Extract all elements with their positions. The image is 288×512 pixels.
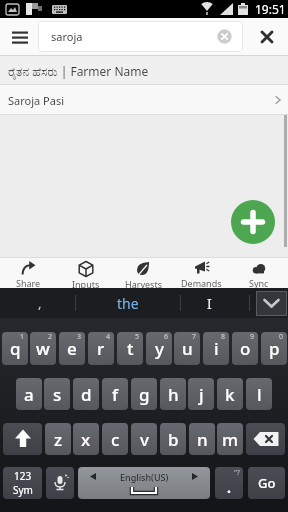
- staticText: e: [67, 337, 77, 360]
- staticText: ರೈತನ ಹೆಸರು | Farmer Name: [8, 63, 149, 79]
- staticText: 19:51: [255, 1, 286, 17]
- staticText: v: [140, 428, 149, 451]
- staticText: the: [117, 294, 139, 313]
- staticText: Sync: [249, 277, 269, 288]
- button[interactable]: v: [131, 423, 157, 455]
- staticText: 7: [192, 332, 197, 342]
- staticText: 0: [279, 332, 284, 342]
- button[interactable]: c: [102, 423, 128, 455]
- staticText: b: [168, 428, 179, 451]
- button[interactable]: u: [174, 332, 200, 365]
- button[interactable]: I: [186, 288, 232, 318]
- button[interactable]: .: [215, 467, 243, 499]
- staticText: 2: [48, 332, 53, 342]
- staticText: 6: [164, 332, 169, 342]
- staticText: English(US): [120, 471, 169, 483]
- button[interactable]: q: [2, 332, 28, 365]
- staticText: t: [127, 337, 134, 360]
- button[interactable]: [6, 24, 34, 50]
- staticText: w: [36, 337, 50, 360]
- button[interactable]: r: [88, 332, 114, 365]
- button[interactable]: x: [73, 423, 99, 455]
- button[interactable]: t: [117, 332, 143, 365]
- button[interactable]: b: [160, 423, 186, 455]
- button[interactable]: k: [217, 378, 243, 410]
- button[interactable]: d: [73, 378, 99, 410]
- button[interactable]: Go: [248, 467, 285, 499]
- staticText: r: [97, 337, 105, 360]
- staticText: c: [111, 428, 120, 451]
- staticText: saroja: [51, 29, 83, 44]
- button[interactable]: o: [232, 332, 258, 365]
- staticText: d: [81, 383, 92, 406]
- staticText: p: [269, 337, 280, 360]
- staticText: I: [207, 294, 212, 313]
- button[interactable]: [252, 24, 282, 50]
- staticText: s: [53, 383, 62, 406]
- staticText: Inputs: [72, 278, 100, 288]
- staticText: m: [222, 428, 239, 451]
- button[interactable]: l: [246, 378, 272, 410]
- button[interactable]: h: [160, 378, 186, 410]
- button[interactable]: w: [30, 332, 56, 365]
- staticText: 123: [14, 469, 32, 483]
- staticText: x: [81, 428, 91, 451]
- staticText: q: [10, 337, 21, 360]
- button[interactable]: a: [16, 378, 42, 410]
- button[interactable]: [46, 467, 74, 499]
- button[interactable]: [3, 423, 42, 455]
- staticText: i: [214, 337, 219, 360]
- button[interactable]: s: [44, 378, 70, 410]
- button[interactable]: [231, 200, 275, 244]
- button[interactable]: j: [188, 378, 214, 410]
- button[interactable]: English(US): [78, 467, 210, 499]
- button[interactable]: 123: [3, 467, 42, 499]
- staticText: f: [112, 383, 119, 406]
- button[interactable]: i: [203, 332, 229, 365]
- staticText: "?: [234, 468, 240, 478]
- staticText: Demands: [181, 277, 222, 288]
- button[interactable]: p: [261, 332, 287, 365]
- button[interactable]: ,: [20, 288, 60, 318]
- staticText: a: [24, 383, 34, 406]
- staticText: 1: [20, 332, 25, 342]
- staticText: 5: [135, 332, 140, 342]
- staticText: Sym: [13, 483, 33, 497]
- staticText: y: [155, 337, 164, 360]
- button[interactable]: m: [217, 423, 243, 455]
- button[interactable]: [246, 423, 285, 455]
- button[interactable]: n: [189, 423, 215, 455]
- button[interactable]: g: [131, 378, 157, 410]
- staticText: .: [227, 478, 231, 497]
- staticText: 9: [250, 332, 255, 342]
- button[interactable]: Demands: [172, 258, 230, 288]
- staticText: 8: [221, 332, 226, 342]
- staticText: n: [197, 428, 208, 451]
- staticText: h: [168, 383, 179, 406]
- button[interactable]: f: [102, 378, 128, 410]
- staticText: 3: [77, 332, 82, 342]
- staticText: Harvests: [125, 278, 162, 288]
- staticText: z: [54, 428, 63, 451]
- button[interactable]: Share: [0, 258, 57, 288]
- button[interactable]: y: [146, 332, 172, 365]
- button[interactable]: Harvests: [114, 258, 172, 288]
- button[interactable]: [217, 29, 232, 44]
- staticText: j: [199, 383, 204, 406]
- staticText: Share: [16, 277, 41, 288]
- button[interactable]: Sync: [230, 258, 288, 288]
- staticText: ,: [38, 294, 42, 312]
- button[interactable]: z: [45, 423, 71, 455]
- staticText: Saroja Pasi: [8, 93, 64, 108]
- staticText: u: [182, 337, 193, 360]
- button[interactable]: [256, 291, 287, 316]
- staticText: Go: [258, 474, 276, 492]
- button[interactable]: the: [93, 288, 163, 318]
- staticText: l: [257, 383, 262, 406]
- button[interactable]: e: [59, 332, 85, 365]
- button[interactable]: Inputs: [57, 258, 114, 288]
- staticText: 4: [106, 332, 111, 342]
- staticText: g: [139, 383, 150, 406]
- staticText: o: [240, 337, 251, 360]
- button[interactable]: Saroja Pasi: [0, 85, 288, 115]
